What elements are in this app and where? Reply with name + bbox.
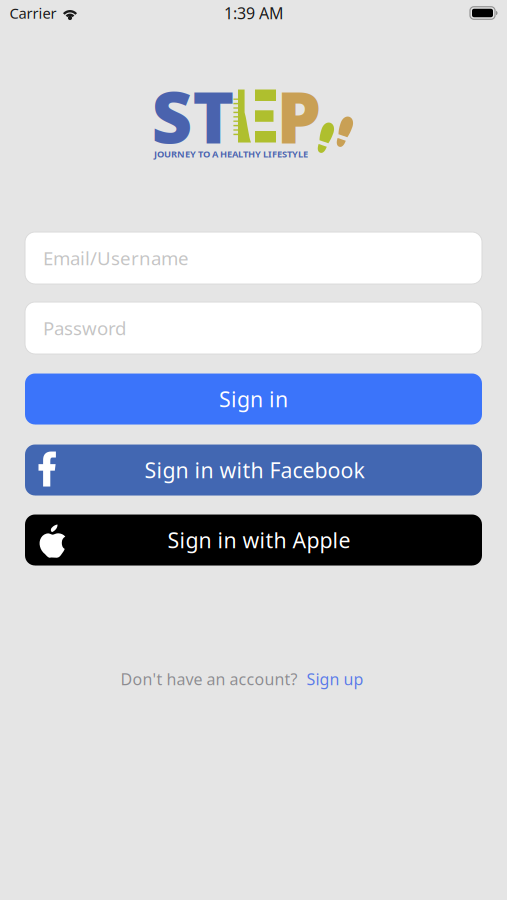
staticText: Email/Username [43,246,189,270]
staticText: 1:39 AM [224,2,284,24]
staticText: Sign in with Apple [167,526,350,554]
staticText: ST [151,69,234,163]
staticText: Sign in [219,385,288,413]
button[interactable]: Sign in with Apple [25,514,482,565]
staticText: Carrier [9,3,56,23]
button[interactable]: Sign in [25,373,482,424]
staticText: Don't have an account? [120,668,297,690]
staticText: Sign up [306,668,363,690]
button[interactable]: Sign up [304,668,365,690]
staticText: Sign in with Facebook [144,456,364,484]
staticText: JOURNEY TO A HEALTHY LIFESTYLE [154,148,308,160]
staticText: P [276,69,321,163]
staticText: Password [43,316,126,340]
button[interactable]: Sign in with Facebook [25,444,482,495]
